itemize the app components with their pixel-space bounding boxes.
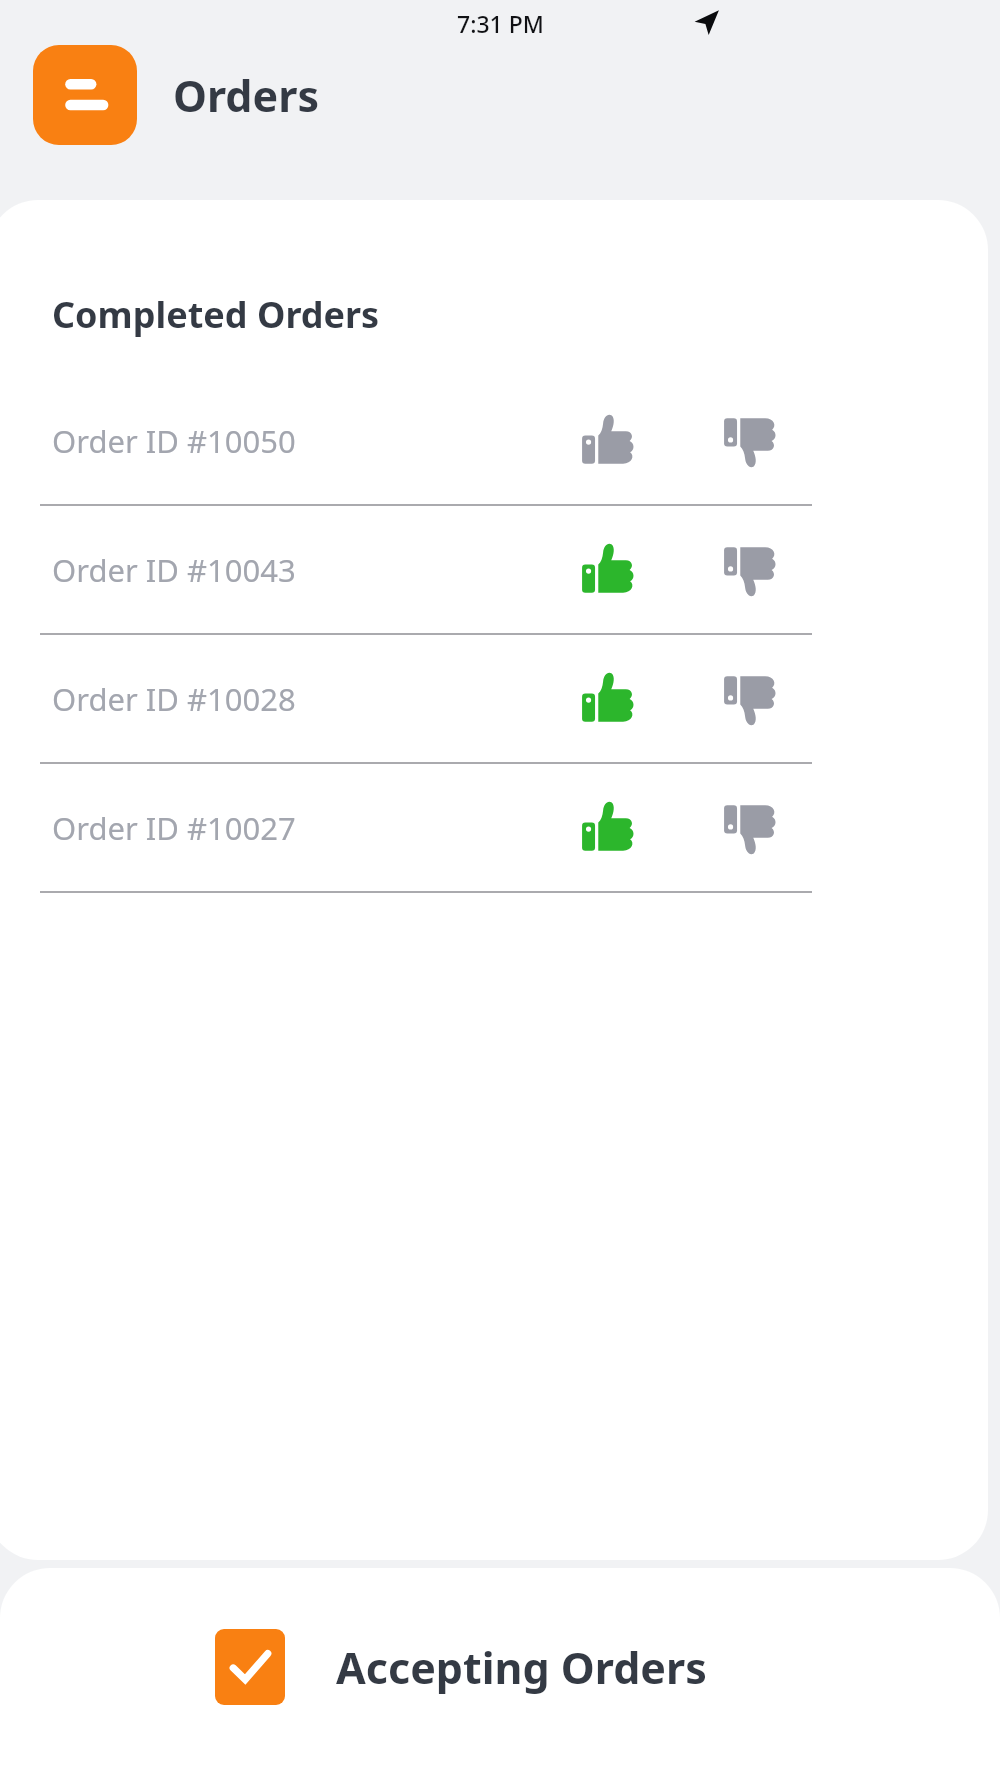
button[interactable]: Thumbs up	[560, 780, 656, 876]
staticText: 7:31 PM	[457, 8, 544, 39]
button[interactable]: Order ID #10027	[0, 764, 988, 891]
button[interactable]: Thumbs up	[560, 522, 656, 618]
button[interactable]: Order ID #10043	[0, 506, 988, 633]
button[interactable]: Thumbs up	[560, 651, 656, 747]
button[interactable]: Thumbs down	[702, 522, 798, 618]
button[interactable]: Order ID #10028	[0, 635, 988, 762]
staticText: Order ID #10050	[52, 420, 296, 462]
staticText: Order ID #10028	[52, 678, 296, 720]
button[interactable]: Thumbs down	[702, 393, 798, 489]
staticText: Completed Orders	[52, 290, 380, 339]
button[interactable]: Open navigation menu	[33, 45, 137, 145]
staticText: Orders	[173, 66, 320, 125]
button[interactable]: Thumbs up	[560, 393, 656, 489]
button[interactable]: Accepting Orders	[0, 1592, 1000, 1742]
staticText: Order ID #10043	[52, 549, 296, 591]
button[interactable]: Order ID #10050	[0, 377, 988, 504]
button[interactable]: Thumbs down	[702, 780, 798, 876]
staticText: Accepting Orders	[336, 1638, 707, 1697]
staticText: Order ID #10027	[52, 807, 296, 849]
button[interactable]: Thumbs down	[702, 651, 798, 747]
